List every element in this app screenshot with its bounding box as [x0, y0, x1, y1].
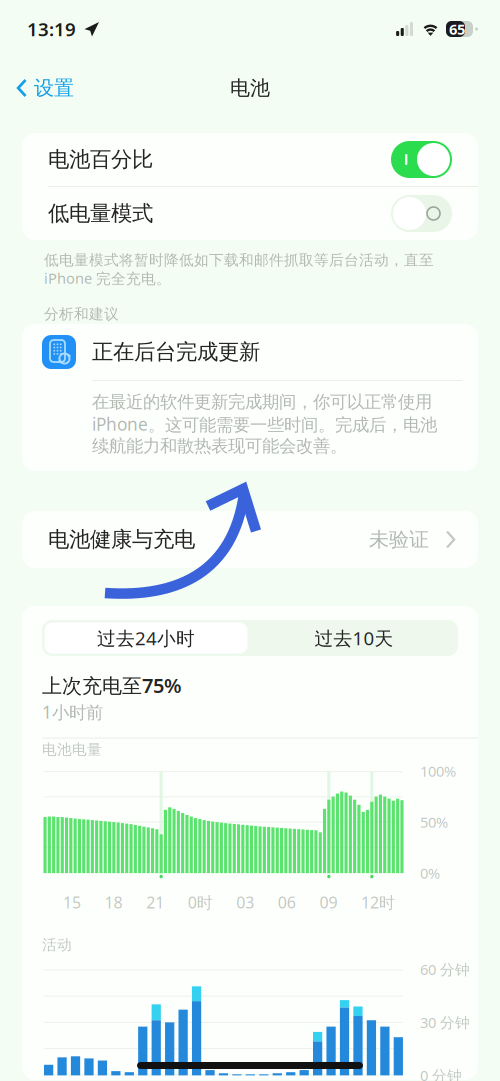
staticText: 低电量模式将暂时降低如下载和邮件抓取等后台活动，直至 [44, 251, 434, 269]
staticText: 过去24小时 [97, 626, 195, 650]
staticText: 21 [146, 892, 164, 913]
staticText: 正在后台完成更新 [92, 339, 260, 365]
button[interactable]: 过去10天 [250, 620, 458, 656]
staticText: 电池健康与充电 [48, 526, 195, 553]
staticText: 在最近的软件更新完成期间，你可以正常使用 [92, 391, 432, 413]
staticText: iPhone 完全充电。 [44, 268, 171, 288]
staticText: 1小时前 [42, 701, 103, 724]
button[interactable]: 电池健康与充电 [0, 511, 500, 568]
staticText: 电池电量 [42, 741, 102, 759]
button[interactable]: 设置 [0, 68, 86, 108]
button[interactable]: 电池百分比 [22, 133, 478, 186]
staticText: 0时 [188, 892, 213, 913]
staticText: 0% [420, 863, 440, 883]
staticText: 续航能力和散热表现可能会改善。 [92, 435, 347, 457]
staticText: 18 [105, 892, 123, 913]
button[interactable]: 过去24小时 [42, 620, 250, 656]
staticText: 未验证 [369, 527, 429, 552]
staticText: 09 [319, 892, 337, 913]
staticText: 50% [420, 812, 448, 832]
staticText: iPhone。这可能需要一些时间。完成后，电池 [92, 412, 437, 436]
staticText: 低电量模式 [48, 200, 153, 227]
staticText: 60 分钟 [420, 960, 470, 979]
staticText: 电池 [230, 76, 270, 100]
staticText: 过去10天 [314, 626, 393, 650]
staticText: 上次充电至75% [42, 672, 182, 699]
staticText: 12时 [361, 892, 395, 913]
staticText: 15 [63, 892, 81, 913]
button[interactable]: 正在后台完成更新 [22, 324, 478, 380]
staticText: 分析和建议 [44, 305, 119, 323]
staticText: 0 分钟 [420, 1066, 462, 1081]
staticText: 活动 [42, 936, 72, 954]
staticText: 65 [449, 19, 465, 39]
button[interactable]: 低电量模式 [22, 187, 478, 240]
staticText: 06 [278, 892, 296, 913]
staticText: 03 [236, 892, 254, 913]
staticText: 电池百分比 [48, 146, 153, 173]
staticText: 13:19 [27, 17, 76, 41]
staticText: 100% [420, 761, 456, 781]
staticText: 30 分钟 [420, 1013, 470, 1032]
staticText: 设置 [34, 76, 74, 100]
